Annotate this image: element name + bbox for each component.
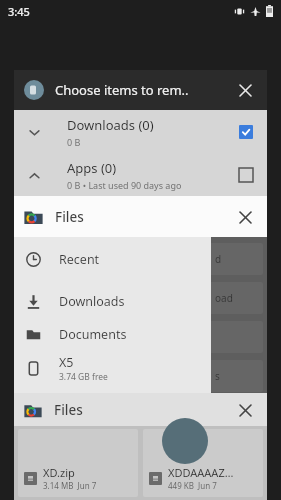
staticText: Downloads	[59, 293, 125, 310]
staticText: 0 B • Last used 90 days ago	[67, 179, 182, 191]
button[interactable]: Collapse	[14, 153, 267, 196]
staticText: X5	[59, 354, 74, 371]
button[interactable]: Collapse	[23, 164, 45, 186]
staticText: Downloads (0)	[67, 116, 154, 134]
button[interactable]: Files	[14, 196, 267, 237]
button[interactable]: Files	[14, 393, 267, 426]
button[interactable]: Expand	[23, 121, 45, 143]
staticText: d	[215, 252, 222, 266]
button[interactable]: Expand	[14, 110, 267, 153]
staticText: oad	[215, 291, 233, 305]
button[interactable]: XDDAAAAZ…	[143, 429, 263, 497]
staticText: 449 KB Jun 7	[168, 480, 217, 491]
staticText: XD.zip	[43, 465, 75, 480]
button[interactable]: oad	[16, 282, 263, 314]
staticText: Choose items to rem..	[55, 81, 189, 99]
button[interactable]: Close	[233, 205, 257, 229]
button[interactable]: Selected	[234, 120, 258, 144]
button[interactable]: XD.zip	[18, 429, 138, 497]
button[interactable]: d	[16, 243, 263, 275]
staticText: 0 B	[67, 136, 81, 148]
staticText: 3.74 GB free	[59, 371, 108, 383]
button[interactable]: Not selected	[234, 163, 258, 187]
button[interactable]: Close	[233, 78, 257, 102]
staticText: Files	[54, 401, 83, 419]
button[interactable]: s	[16, 360, 263, 392]
button[interactable]: Downloads	[14, 285, 211, 318]
button[interactable]: Close	[233, 398, 257, 422]
button[interactable]: Recent	[14, 243, 211, 276]
staticText: Documents	[59, 326, 127, 343]
staticText: Apps (0)	[67, 159, 117, 177]
staticText: 3:45	[8, 4, 30, 19]
staticText: Recent	[59, 251, 100, 268]
button[interactable]	[16, 321, 263, 353]
staticText: s	[215, 369, 220, 383]
button[interactable]: Documents	[14, 318, 211, 351]
button[interactable]: Choose items to rem..	[14, 70, 267, 110]
staticText: XDDAAAAZ…	[168, 465, 234, 480]
staticText: 3.14 MB Jun 7	[43, 480, 97, 491]
staticText: Files	[55, 208, 84, 226]
button[interactable]: X5	[14, 351, 211, 385]
